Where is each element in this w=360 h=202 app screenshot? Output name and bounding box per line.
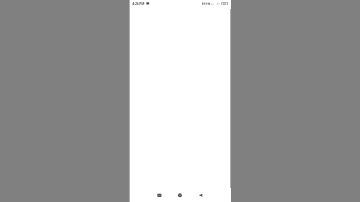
button[interactable]: Home xyxy=(171,188,189,202)
button[interactable]: Recent apps xyxy=(150,188,168,202)
button[interactable]: Back xyxy=(192,188,210,202)
